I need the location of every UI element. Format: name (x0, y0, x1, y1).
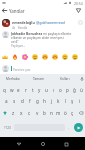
button[interactable]: w (8, 84, 15, 95)
button[interactable]: z (9, 107, 17, 119)
staticText: a (5, 98, 8, 104)
button[interactable]: o (57, 84, 64, 95)
button[interactable]: e (15, 84, 22, 95)
button[interactable]: y (36, 84, 43, 95)
staticText: ş (71, 98, 74, 104)
staticText: ı (53, 87, 55, 93)
button[interactable]: m (55, 107, 62, 119)
staticText: ?123 (4, 126, 11, 130)
button[interactable]: ö (62, 107, 69, 119)
button[interactable]: ?123 (0, 119, 14, 136)
staticText: Yanıtlar (9, 8, 25, 14)
staticText: 4s Yanıtla (12, 26, 28, 30)
staticText: z (12, 110, 15, 116)
button[interactable]: Emoji 1 (2, 54, 8, 60)
button[interactable]: Send (71, 119, 85, 136)
button[interactable]: ç (69, 107, 76, 119)
staticText: @gokhanemrexd (36, 20, 65, 25)
button[interactable]: j (48, 95, 55, 107)
button[interactable]: g (34, 95, 41, 107)
button[interactable]: v (33, 107, 41, 119)
button[interactable]: Shift (0, 107, 9, 119)
button[interactable]: Recent apps (61, 139, 71, 149)
button[interactable]: Emoji 4 (32, 54, 38, 60)
button[interactable]: x (17, 107, 25, 119)
button[interactable]: l (62, 95, 69, 107)
button[interactable]: c (25, 107, 33, 119)
button[interactable]: s (10, 95, 18, 107)
button[interactable]: Emoji 6 (52, 54, 58, 60)
staticText: Tamam (33, 77, 45, 81)
button[interactable]: Backspace (76, 107, 85, 119)
staticText: s (13, 98, 16, 104)
staticText: p (66, 87, 69, 93)
staticText: Paylaşan... (11, 44, 26, 48)
button[interactable]: Emoji 5 (42, 54, 48, 60)
button[interactable]: a (2, 95, 10, 107)
button[interactable]: k (55, 95, 62, 107)
staticText: l (65, 98, 67, 104)
staticText: g (36, 98, 39, 104)
staticText: mi paylaştı elbette (43, 31, 72, 35)
staticText: ç (71, 110, 74, 116)
button[interactable]: u (43, 84, 50, 95)
staticText: h (43, 98, 46, 104)
staticText: w (10, 87, 14, 93)
button[interactable]: Back (14, 139, 24, 149)
button[interactable]: b (41, 107, 48, 119)
staticText: Yanıtını yaz (13, 67, 31, 71)
button[interactable]: p (64, 84, 71, 95)
staticText: m (56, 110, 61, 116)
button[interactable]: Emoji 7 (62, 54, 68, 60)
staticText: 20:54 (74, 1, 83, 6)
staticText: r (25, 87, 27, 93)
button[interactable]: d (18, 95, 26, 107)
button[interactable]: ğ (71, 84, 78, 95)
staticText: j (51, 98, 53, 104)
staticText: i (79, 98, 81, 104)
button[interactable]: Emoji 8 (72, 54, 78, 60)
staticText: ğ (73, 87, 76, 93)
staticText: k (57, 98, 60, 104)
button[interactable]: n (48, 107, 55, 119)
staticText: v (36, 110, 39, 116)
staticText: cetli" (11, 39, 19, 43)
button[interactable]: r (22, 84, 29, 95)
button[interactable]: Kolları (52, 74, 78, 84)
button[interactable]: Emoji 3 (22, 54, 28, 60)
staticText: ü (80, 87, 83, 93)
staticText: elbette ve paylaşım aldın mertçesi (11, 35, 83, 39)
staticText: y (38, 87, 41, 93)
staticText: ö (64, 110, 67, 116)
button[interactable]: ı (50, 84, 57, 95)
staticText: o (59, 87, 62, 93)
button[interactable]: ü (78, 84, 85, 95)
button[interactable]: Tamam (26, 74, 52, 84)
staticText: x (20, 110, 23, 116)
button[interactable]: ş (69, 95, 76, 107)
staticText: Kolları (60, 77, 70, 81)
staticText: f (29, 98, 31, 104)
staticText: u (45, 87, 48, 93)
staticText: Merhaba (6, 77, 20, 81)
button[interactable]: More options (77, 19, 83, 25)
staticText: c (28, 110, 31, 116)
button[interactable]: Back (0, 6, 9, 15)
button[interactable]: h (41, 95, 48, 107)
button[interactable]: Voice input (78, 74, 85, 84)
button[interactable]: Share (74, 6, 83, 15)
staticText: . (68, 125, 69, 130)
button[interactable]: t (29, 84, 36, 95)
button[interactable]: q (0, 84, 8, 95)
staticText: b (43, 110, 46, 116)
button[interactable]: Emoji 2 (12, 54, 18, 60)
button[interactable]: Home (38, 139, 48, 149)
button[interactable]: i (76, 95, 83, 107)
staticText: d (21, 98, 24, 104)
staticText: n (50, 110, 53, 116)
staticText: q (3, 87, 6, 93)
button[interactable]: Merhaba (0, 74, 26, 84)
button[interactable]: f (26, 95, 34, 107)
